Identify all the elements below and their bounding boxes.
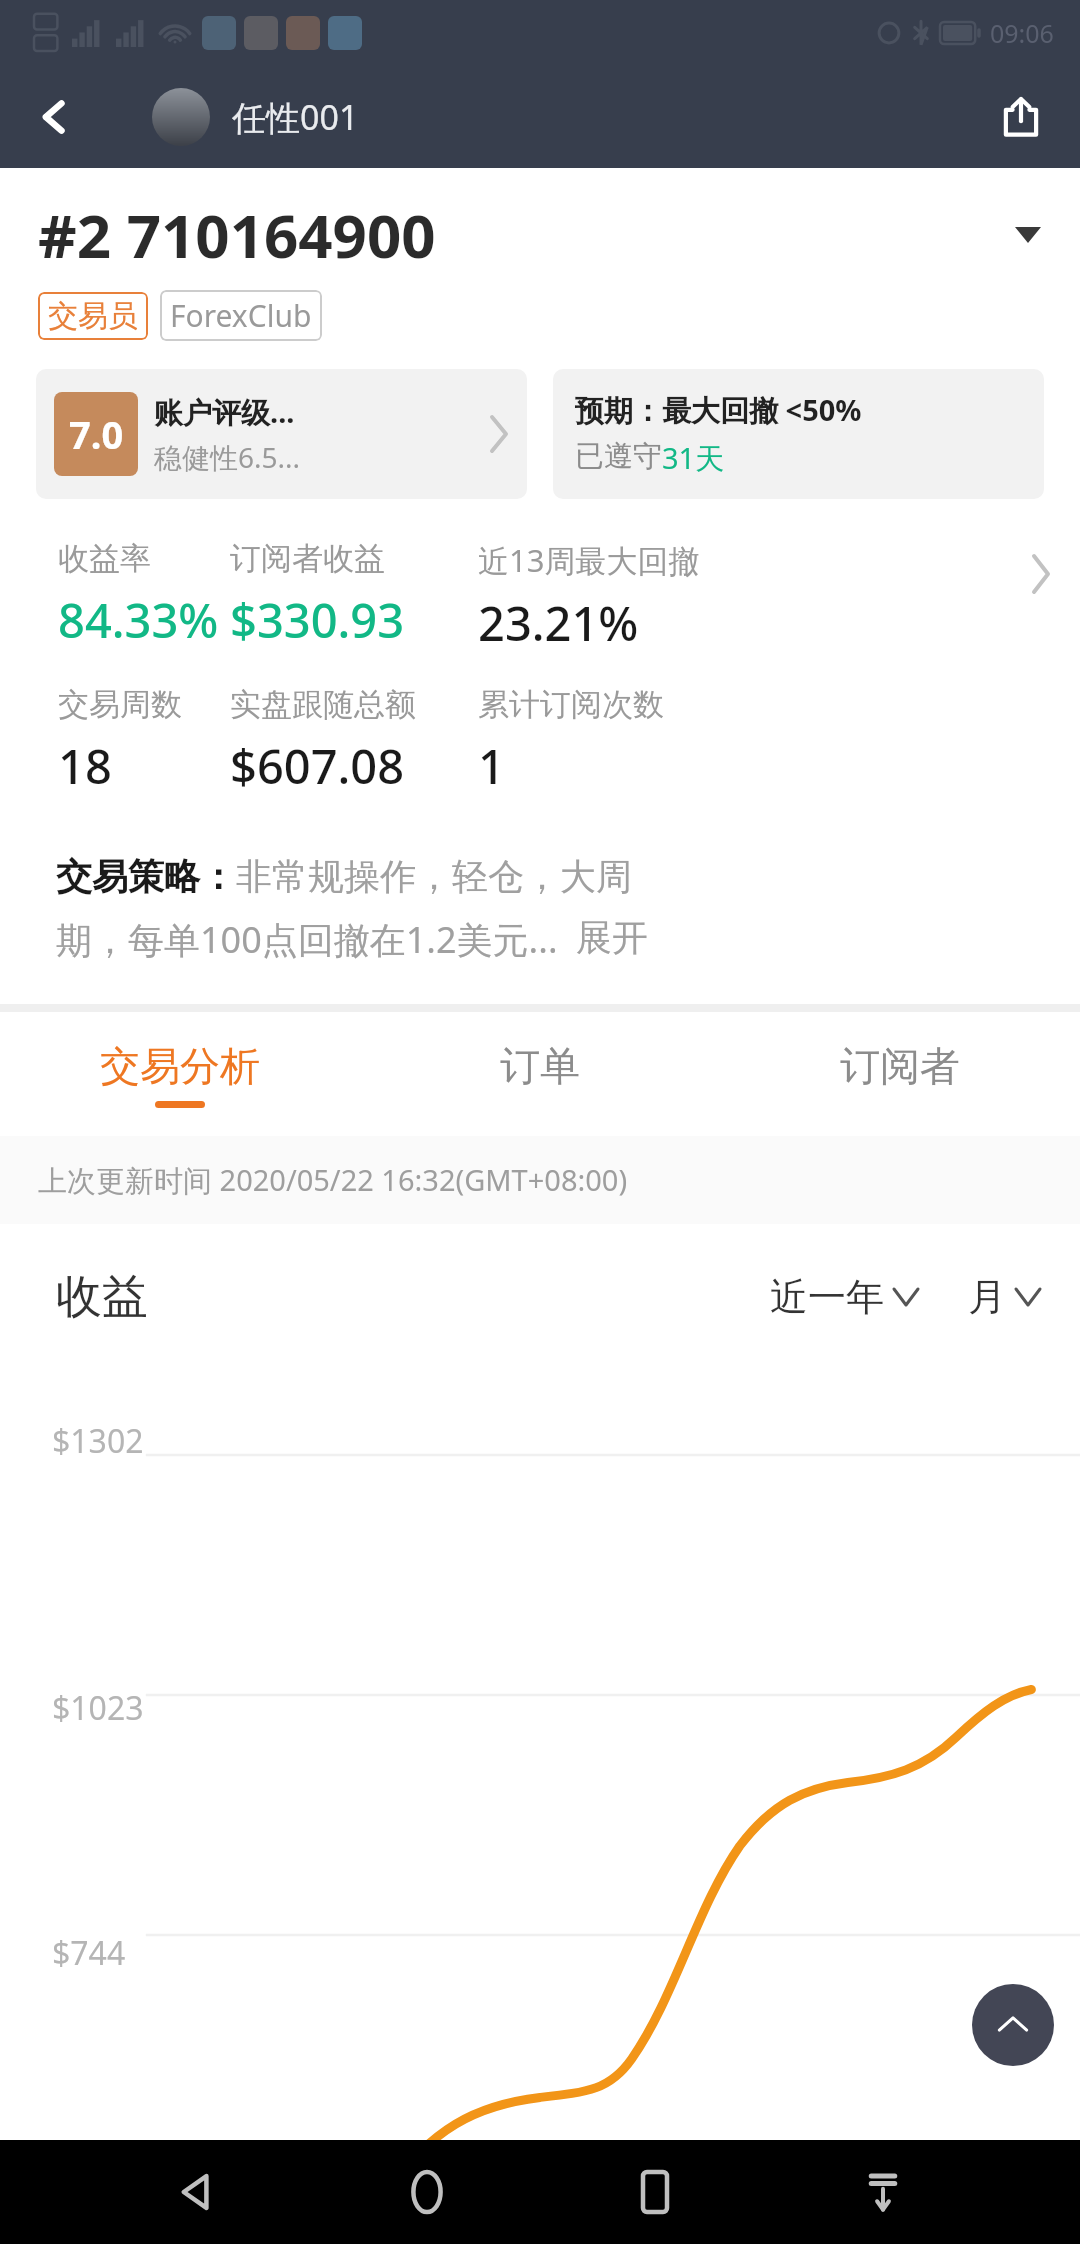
staticText: 23.21%	[478, 591, 639, 655]
staticText: 累计订阅次数	[478, 685, 664, 724]
staticText: 交易周数	[58, 685, 182, 724]
staticText: 非常规操作，轻仓，大周	[236, 854, 632, 899]
button[interactable]: Scroll to top	[972, 1984, 1054, 2066]
staticText: 上次更新时间 2020/05/22 16:32(GMT+08:00)	[38, 1160, 628, 1200]
button[interactable]: 7.0	[36, 369, 527, 499]
staticText: 月	[968, 1273, 1006, 1321]
staticText: $1302	[52, 1419, 144, 1463]
staticText: 18	[58, 734, 112, 798]
button[interactable]: 交易分析	[0, 1012, 360, 1136]
staticText: $607.08	[230, 734, 405, 798]
staticText: 近一年	[770, 1273, 884, 1321]
staticText: 84.33%	[58, 588, 219, 652]
staticText: 订阅者	[840, 1041, 960, 1091]
staticText: 预期：最大回撤 <50%	[575, 390, 862, 430]
staticText: 订阅者收益	[230, 539, 385, 578]
staticText: 收益	[56, 1268, 148, 1326]
staticText: $1023	[52, 1686, 144, 1730]
staticText: 已遵守	[575, 438, 662, 475]
button[interactable]: Expand	[1000, 207, 1056, 263]
staticText: 收益率	[58, 539, 151, 578]
button[interactable]: Recents	[610, 2147, 700, 2237]
staticText: $744	[52, 1931, 126, 1975]
staticText: 交易员	[48, 297, 138, 335]
button[interactable]: Back	[153, 2147, 243, 2237]
button[interactable]: 订阅者	[720, 1012, 1080, 1136]
button[interactable]: Share	[984, 80, 1058, 154]
button[interactable]: Hide navigation bar	[838, 2147, 928, 2237]
button[interactable]: ForexClub	[170, 295, 312, 336]
staticText: 稳健性6.5...	[154, 438, 301, 476]
staticText: 近13周最大回撤	[478, 539, 700, 581]
staticText: ForexClub	[170, 295, 312, 336]
button[interactable]: Home	[382, 2147, 472, 2237]
staticText: 账户评级...	[154, 392, 295, 432]
staticText: 09:06	[990, 16, 1054, 50]
button[interactable]: 展开	[576, 915, 648, 960]
staticText: 期，每单100点回撤在1.2美元...	[56, 915, 558, 964]
staticText: $330.93	[230, 588, 405, 652]
staticText: 交易策略：	[56, 854, 236, 899]
staticText: 31天	[662, 438, 725, 478]
button[interactable]: 交易员	[48, 297, 138, 335]
button[interactable]: Back	[18, 81, 90, 153]
staticText: 订单	[500, 1041, 580, 1091]
button[interactable]: 订单	[360, 1012, 720, 1136]
staticText: 7.0	[69, 408, 124, 460]
staticText: 1	[478, 734, 505, 798]
button[interactable]: 近一年	[770, 1273, 918, 1321]
staticText: 任性001	[232, 94, 359, 140]
staticText: 实盘跟随总额	[230, 685, 416, 724]
button[interactable]: 月	[968, 1273, 1040, 1321]
staticText: 交易分析	[100, 1041, 260, 1091]
staticText: #2 710164900	[38, 194, 436, 276]
button[interactable]: 预期：最大回撤 <50%	[553, 369, 1044, 499]
